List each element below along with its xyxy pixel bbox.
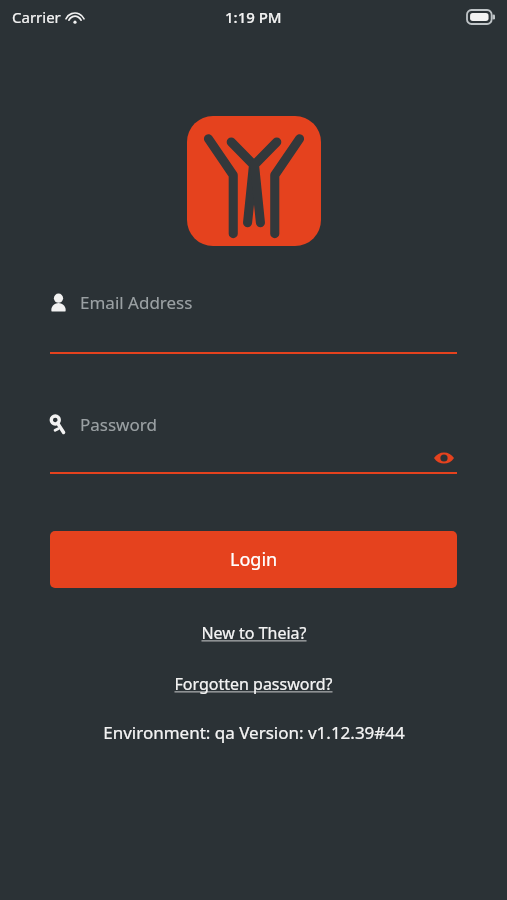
- staticText: Password: [80, 413, 157, 436]
- staticText: Email Address: [80, 291, 193, 314]
- staticText: New to Theia?: [201, 622, 307, 644]
- staticText: Login: [230, 547, 278, 572]
- staticText: Carrier: [12, 7, 61, 27]
- button[interactable]: Show password: [431, 445, 457, 471]
- button[interactable]: New to Theia?: [195, 616, 313, 650]
- staticText: 1:19 PM: [225, 7, 282, 27]
- staticText: Environment: qa Version: v1.12.39#44: [103, 721, 405, 744]
- button[interactable]: Forgotten password?: [168, 667, 339, 701]
- staticText: Forgotten password?: [174, 673, 333, 695]
- button[interactable]: Password: [50, 404, 457, 444]
- button[interactable]: Email Address: [50, 282, 457, 322]
- button[interactable]: Login: [50, 531, 457, 588]
